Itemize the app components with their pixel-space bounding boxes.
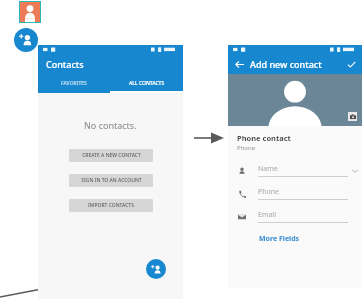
button[interactable]: IMPORT CONTACTS	[69, 199, 153, 212]
staticText: Phone contact	[237, 133, 291, 143]
staticText: IMPORT CONTACTS	[88, 202, 134, 209]
button[interactable]: Save	[344, 57, 358, 71]
staticText: CREATE A NEW CONTACT	[82, 152, 141, 159]
staticText: Phone	[237, 144, 256, 152]
staticText: ALL CONTACTS	[129, 80, 165, 87]
button[interactable]: Change photo	[348, 112, 357, 121]
staticText: Contacts	[46, 58, 84, 70]
staticText: More Fields	[259, 234, 300, 244]
staticText: Add new contact	[250, 58, 322, 70]
button[interactable]: ALL CONTACTS	[110, 74, 183, 93]
button[interactable]: Phone	[228, 187, 362, 201]
button[interactable]: Back	[232, 57, 246, 71]
staticText: Name	[258, 164, 278, 174]
button[interactable]: Name	[228, 164, 362, 178]
staticText: SIGN IN TO AN ACCOUNT	[81, 177, 142, 184]
button[interactable]: CREATE A NEW CONTACT	[69, 149, 153, 162]
button[interactable]: Create new contact	[146, 259, 166, 279]
button[interactable]: Email	[228, 210, 362, 224]
button[interactable]: More Fields	[259, 234, 300, 244]
staticText: No contacts.	[84, 119, 137, 131]
staticText: Phone	[258, 187, 280, 197]
button[interactable]: Add contact	[14, 28, 38, 52]
button[interactable]: FAVORITES	[38, 74, 110, 93]
button[interactable]: Contacts app icon	[20, 2, 40, 22]
staticText: Email	[258, 210, 276, 220]
staticText: FAVORITES	[61, 80, 87, 87]
button[interactable]: SIGN IN TO AN ACCOUNT	[69, 174, 153, 187]
